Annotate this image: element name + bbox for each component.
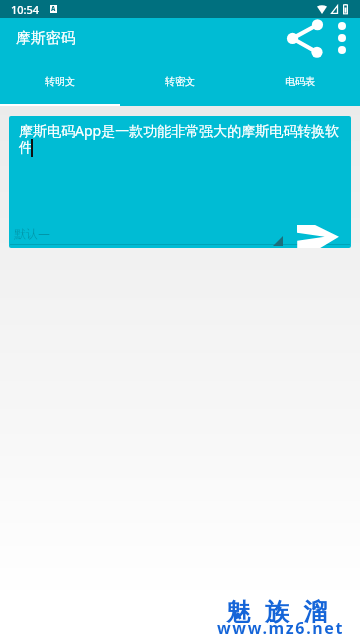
staticText: 电码表 <box>285 75 315 88</box>
button[interactable]: Send <box>290 216 342 248</box>
button[interactable]: 电码表 <box>240 58 360 104</box>
staticText: 转密文 <box>165 75 195 88</box>
staticText: 10:54 <box>11 2 40 17</box>
staticText: 默认— <box>14 225 51 241</box>
staticText: 摩斯电码App是一款功能非常强大的摩斯电码转换软件 <box>19 121 344 156</box>
button[interactable]: Share <box>280 18 324 58</box>
staticText: 魅 族 溜 <box>226 594 332 627</box>
staticText: A <box>51 5 56 13</box>
button[interactable]: 转密文 <box>120 58 240 104</box>
staticText: 摩斯密码 <box>16 29 76 48</box>
staticText: 转明文 <box>45 75 75 88</box>
button[interactable]: More options <box>324 18 355 58</box>
button[interactable]: 转明文 <box>0 58 120 104</box>
staticText: www.mz6.net <box>217 617 345 639</box>
button[interactable]: 摩斯电码App是一款功能非常强大的摩斯电码转换软件 <box>9 116 351 248</box>
